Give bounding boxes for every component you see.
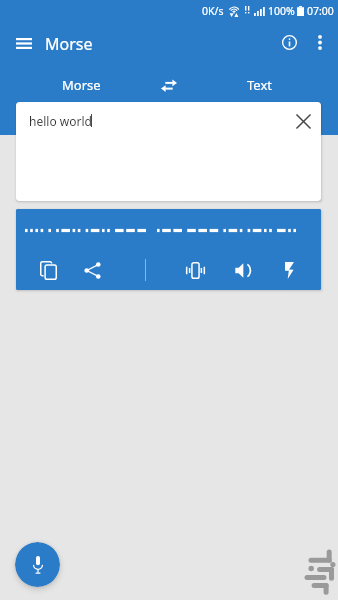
button[interactable]: Share [75,255,109,285]
staticText: hello world [29,113,92,129]
button[interactable]: Morse [41,70,121,100]
staticText: 07:00 [307,4,334,18]
staticText: Text [247,76,272,94]
button[interactable]: More options [304,26,336,58]
staticText: Morse [45,33,93,55]
button[interactable]: Text [219,70,299,100]
button[interactable]: Flashlight [272,255,306,285]
button[interactable]: Info [273,26,305,58]
button[interactable]: Vibrate [178,255,212,285]
staticText: Morse [62,76,101,94]
button[interactable]: Swap languages [145,70,193,100]
button[interactable]: Navigation menu [8,27,40,59]
button[interactable]: Play sound [226,255,260,285]
button[interactable]: Voice input [15,542,60,587]
button[interactable]: Copy [31,255,65,285]
button[interactable]: Clear text [290,108,316,134]
staticText: 0K/s [202,4,224,18]
staticText: 100% [268,4,295,18]
